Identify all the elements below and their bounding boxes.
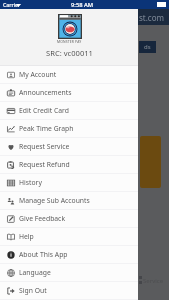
- staticText: Request Refund: [19, 160, 70, 169]
- button[interactable]: History: [0, 174, 138, 191]
- staticText: 9:58 AM: [71, 1, 94, 9]
- button[interactable]: Sign Out: [0, 282, 138, 299]
- staticText: History: [19, 178, 42, 187]
- button[interactable]: My Account: [0, 66, 138, 83]
- button[interactable]: Request Refund: [0, 156, 138, 173]
- button[interactable]: Give Feedback: [0, 210, 138, 227]
- staticText: Sign Out: [19, 286, 47, 295]
- staticText: Give Feedback: [19, 214, 66, 223]
- staticText: st.com: [139, 12, 165, 23]
- button[interactable]: Language: [0, 264, 138, 281]
- button[interactable]: Announcements: [0, 84, 138, 101]
- button[interactable]: Edit Credit Card: [0, 102, 138, 119]
- staticText: ds: [144, 43, 151, 51]
- button[interactable]: About This App: [0, 246, 138, 263]
- staticText: SRC: vc00011: [46, 48, 93, 58]
- button[interactable]: Peak Time Graph: [0, 120, 138, 137]
- staticText: My Account: [19, 70, 57, 79]
- button[interactable]: Help: [0, 228, 138, 245]
- staticText: MONSTER PAY: [57, 39, 82, 44]
- staticText: Edit Credit Card: [19, 106, 69, 115]
- staticText: Announcements: [19, 88, 72, 97]
- button[interactable]: Manage Sub Accounts: [0, 192, 138, 209]
- button[interactable]: Request Service: [0, 138, 138, 155]
- staticText: Carrier: [3, 1, 21, 8]
- staticText: Peak Time Graph: [19, 124, 74, 133]
- staticText: Language: [19, 268, 51, 277]
- staticText: About This App: [19, 250, 68, 259]
- staticText: Help: [19, 232, 34, 241]
- staticText: Manage Sub Accounts: [19, 196, 90, 205]
- staticText: Request Service: [19, 142, 70, 151]
